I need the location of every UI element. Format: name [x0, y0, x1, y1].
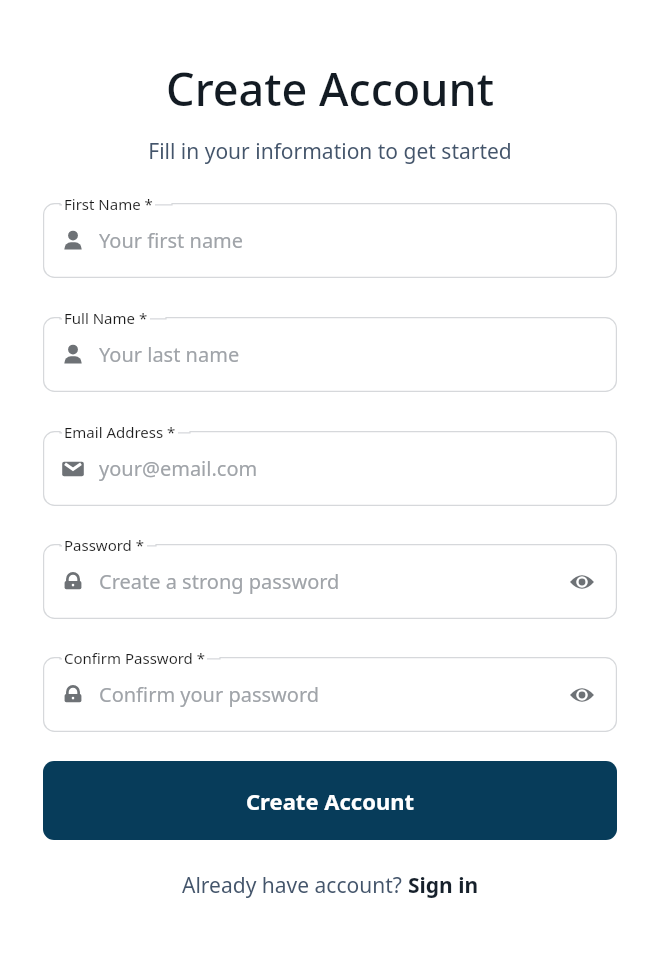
staticText: Your first name — [99, 227, 244, 254]
staticText: Create Account — [166, 58, 494, 119]
button[interactable]: Create Account — [43, 761, 617, 840]
button[interactable]: Already have account? — [182, 871, 479, 900]
staticText: Sign in — [408, 871, 479, 900]
staticText: Create a strong password — [99, 568, 340, 595]
staticText: your@email.com — [99, 455, 258, 482]
staticText: Fill in your information to get started — [148, 137, 512, 166]
staticText: Your last name — [99, 341, 240, 368]
button[interactable]: Toggle password visibility — [565, 678, 599, 712]
staticText: Confirm Password * — [64, 648, 205, 668]
staticText: Already have account? — [182, 871, 408, 900]
staticText: Full Name * — [64, 308, 148, 328]
staticText: Create Account — [246, 786, 415, 816]
staticText: First Name * — [64, 194, 153, 214]
staticText: Email Address * — [64, 422, 176, 442]
staticText: Password * — [64, 535, 145, 555]
staticText: Confirm your password — [99, 681, 320, 708]
button[interactable]: Toggle password visibility — [565, 565, 599, 599]
